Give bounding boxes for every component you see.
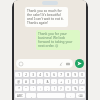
button[interactable]: 1 [15, 72, 22, 77]
staticText: _ [39, 80, 41, 84]
staticText: @ [17, 80, 20, 84]
staticText: 6 [53, 73, 55, 77]
button[interactable]: ' [30, 86, 36, 91]
button[interactable]: + [58, 79, 64, 84]
button[interactable]: , [26, 93, 36, 98]
button[interactable]: _ [37, 79, 43, 84]
button[interactable]: ABC [15, 93, 25, 98]
staticText: , [31, 94, 32, 98]
button[interactable]: 2 [23, 72, 29, 77]
staticText: ( [68, 80, 69, 84]
staticText: Thank you for your business! We look for… [38, 32, 78, 48]
staticText: & [46, 80, 49, 84]
button[interactable]: Emoji [19, 62, 23, 66]
staticText: * [18, 87, 20, 91]
button[interactable]: . [66, 93, 75, 98]
button[interactable]: ⌫ [76, 93, 85, 98]
button[interactable]: ) [72, 79, 78, 84]
staticText: ABC [17, 94, 23, 98]
button[interactable]: ~ [79, 86, 85, 91]
button[interactable]: # [23, 79, 29, 84]
button[interactable]: * [15, 86, 22, 91]
button[interactable]: ! [51, 86, 57, 91]
button[interactable]: Emoji [16, 59, 73, 68]
staticText: 2 [25, 73, 27, 77]
staticText: % [74, 87, 77, 91]
button[interactable]: / [79, 79, 85, 84]
button[interactable]: 5 [44, 72, 50, 77]
button[interactable]: 0 [79, 72, 85, 77]
staticText: 0 [81, 73, 83, 77]
staticText: Thank you so much for the cake! It's bea… [27, 9, 66, 25]
button[interactable]: = [65, 86, 71, 91]
button[interactable]: & [44, 79, 50, 84]
button[interactable]: 4 [37, 72, 43, 77]
button[interactable]: 6 [51, 72, 57, 77]
button[interactable]: Thank you so much for the cake! It's bea… [25, 7, 68, 27]
staticText: " [25, 87, 27, 91]
button[interactable]: " [23, 86, 29, 91]
staticText: - [54, 80, 55, 84]
button[interactable]: 3 [30, 72, 36, 77]
staticText: 7 [60, 73, 62, 77]
staticText: ' [33, 87, 34, 91]
staticText: : [40, 87, 41, 91]
button[interactable]: ; [44, 86, 50, 91]
button[interactable]: Thank you for your business! We look for… [36, 30, 80, 50]
button[interactable] [42, 1, 58, 5]
staticText: ! [54, 87, 55, 91]
staticText: . [70, 94, 71, 98]
staticText: 9 [74, 73, 76, 77]
button[interactable]: @ [15, 79, 22, 84]
button[interactable]: Camera [66, 62, 70, 66]
staticText: ; [47, 87, 48, 91]
staticText: ~ [81, 87, 83, 91]
staticText: ) [75, 80, 76, 84]
button[interactable]: 9 [72, 72, 78, 77]
button[interactable]: % [72, 86, 78, 91]
staticText: / [81, 80, 83, 84]
button[interactable]: - [51, 79, 57, 84]
staticText: ? [60, 87, 62, 91]
button[interactable]: 7 [58, 72, 64, 77]
staticText: ⌫ [78, 94, 83, 97]
button[interactable]: Attach [59, 62, 63, 66]
button[interactable]: ( [65, 79, 71, 84]
staticText: 1 [18, 73, 20, 77]
button[interactable]: ? [58, 86, 64, 91]
button[interactable]: : [37, 86, 43, 91]
staticText: 8 [67, 73, 69, 77]
staticText: # [25, 80, 27, 84]
staticText: 3 [32, 73, 34, 77]
button[interactable]: $ [30, 79, 36, 84]
button[interactable]: 8 [65, 72, 71, 77]
staticText: 5 [46, 73, 48, 77]
staticText: $ [32, 80, 34, 84]
staticText: + [60, 80, 62, 84]
staticText: 4 [39, 73, 41, 77]
staticText: = [67, 87, 69, 91]
button[interactable]: Send [75, 59, 84, 68]
